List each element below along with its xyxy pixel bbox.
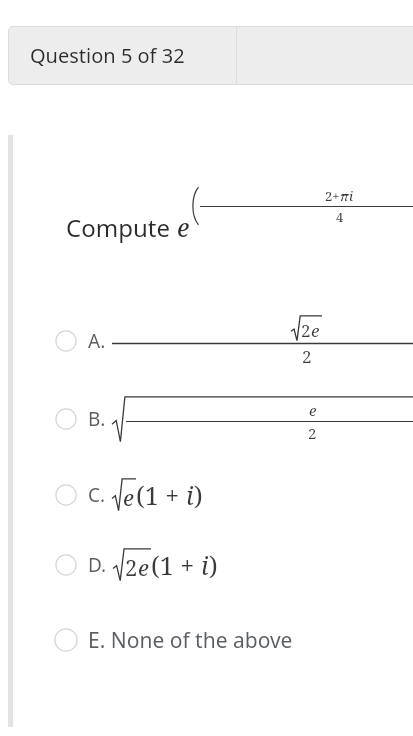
staticText: A. — [88, 328, 106, 354]
staticText: Question 5 of 32 — [30, 42, 185, 69]
staticText: 2 — [125, 552, 138, 582]
button[interactable]: Option B — [0, 388, 413, 450]
staticText: 2 — [302, 345, 312, 368]
staticText: (1 + — [136, 478, 186, 512]
staticText: e — [177, 210, 190, 244]
staticText: 2+ — [325, 187, 340, 205]
staticText: e — [311, 319, 320, 342]
staticText: ) — [209, 548, 218, 582]
button[interactable]: Question 5 of 32 — [8, 26, 237, 85]
staticText: π — [340, 187, 349, 205]
staticText: e — [309, 400, 317, 420]
staticText: 4 — [336, 208, 344, 226]
button[interactable]: Next question tab — [237, 26, 413, 85]
staticText: i — [201, 548, 209, 582]
staticText: C. — [88, 482, 106, 508]
button[interactable]: Option C — [0, 464, 413, 526]
staticText: i — [349, 187, 354, 205]
staticText: B. — [88, 406, 106, 432]
staticText: 2 — [301, 319, 311, 342]
staticText: ) — [194, 478, 203, 512]
button[interactable]: Option E None of the above — [0, 608, 413, 672]
staticText: (1 + — [151, 548, 201, 582]
button[interactable]: Option D — [0, 534, 413, 596]
staticText: e — [123, 482, 134, 512]
staticText: Compute — [66, 211, 177, 244]
staticText: i — [186, 478, 194, 512]
staticText: D. — [88, 552, 107, 578]
staticText: e — [138, 552, 149, 582]
staticText: E. None of the above — [88, 626, 293, 655]
button[interactable]: Option A — [0, 310, 413, 372]
staticText: 2 — [308, 423, 317, 443]
